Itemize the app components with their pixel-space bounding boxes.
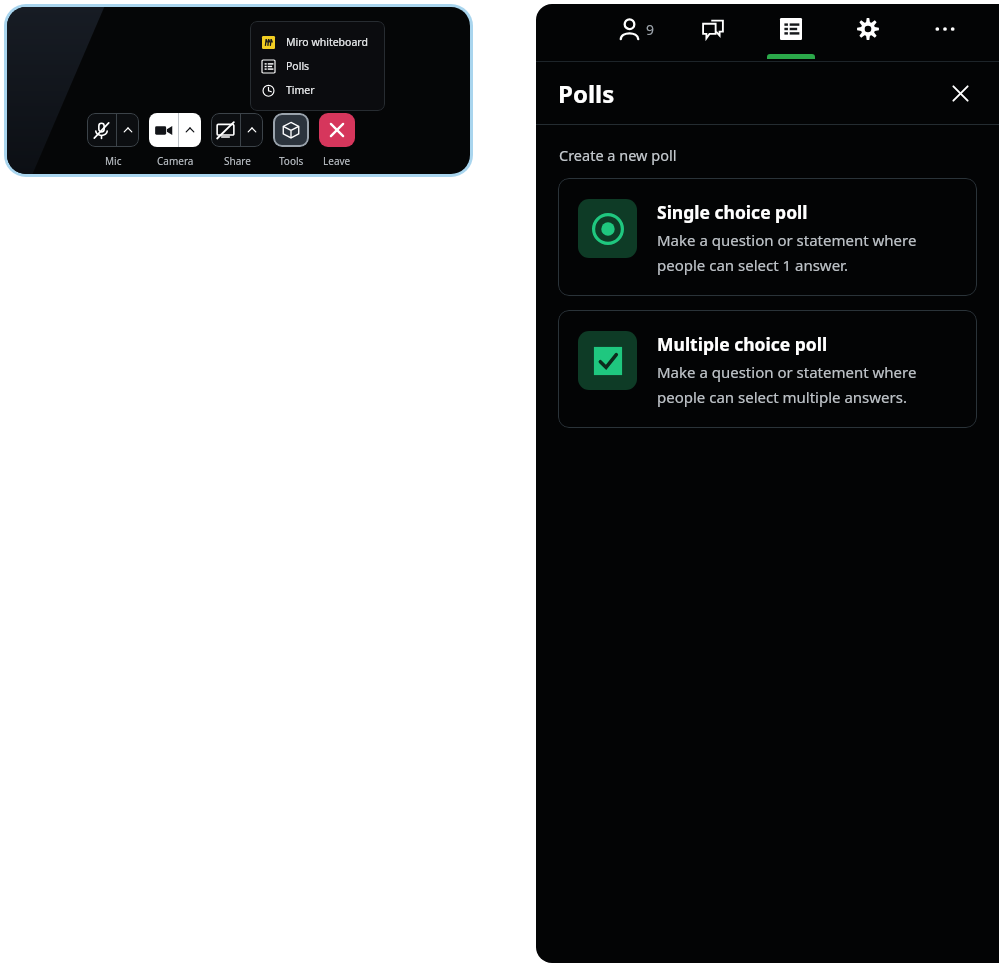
staticText: Timer <box>286 83 315 97</box>
button[interactable]: Polls <box>250 54 385 78</box>
button[interactable]: Leave <box>319 113 355 147</box>
button[interactable]: Chat <box>685 4 741 61</box>
staticText: 9 <box>646 20 655 39</box>
staticText: Share <box>224 154 251 168</box>
button[interactable]: Settings <box>840 4 896 61</box>
button[interactable]: Tools <box>273 113 309 147</box>
staticText: Single choice poll <box>657 200 808 224</box>
button[interactable]: Miro whiteboard <box>250 30 385 54</box>
button[interactable]: Close <box>943 76 977 110</box>
button[interactable]: More options <box>917 4 973 61</box>
button[interactable]: Camera options <box>179 113 201 147</box>
staticText: Mic <box>105 154 122 168</box>
staticText: Leave <box>323 154 351 168</box>
staticText: Miro whiteboard <box>286 35 368 49</box>
button[interactable]: Participants, 9 <box>608 4 664 61</box>
button[interactable]: Share options <box>211 113 263 147</box>
button[interactable]: Mic options <box>87 113 139 147</box>
button[interactable]: Timer <box>250 78 385 102</box>
button[interactable]: Single choice poll <box>558 178 977 296</box>
button[interactable]: Polls <box>763 4 819 61</box>
staticText: Polls <box>558 77 615 110</box>
staticText: Tools <box>279 154 304 168</box>
staticText: Make a question or statement where peopl… <box>657 362 917 407</box>
staticText: Create a new poll <box>559 145 677 165</box>
staticText: Multiple choice poll <box>657 332 828 356</box>
button[interactable]: Mic options <box>117 113 139 147</box>
staticText: Camera <box>157 154 194 168</box>
staticText: Make a question or statement where peopl… <box>657 230 917 275</box>
staticText: Polls <box>286 59 310 73</box>
button[interactable]: Camera options <box>149 113 201 147</box>
button[interactable]: Multiple choice poll <box>558 310 977 428</box>
button[interactable]: Share options <box>241 113 263 147</box>
